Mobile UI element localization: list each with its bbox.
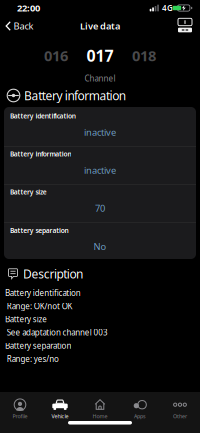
button[interactable]: 017 xyxy=(85,45,115,66)
staticText: Channel xyxy=(84,73,115,84)
staticText: 4G xyxy=(162,3,173,13)
staticText: Battery size xyxy=(10,188,47,196)
staticText: 016 xyxy=(44,46,68,65)
staticText: Range: OK/not OK xyxy=(5,301,73,311)
staticText: Home xyxy=(92,413,107,420)
button[interactable]: 016 xyxy=(41,46,71,65)
button[interactable]: Vehicle xyxy=(40,396,80,422)
staticText: 018 xyxy=(132,46,156,65)
button[interactable]: Other xyxy=(160,396,200,422)
staticText: Profile xyxy=(12,413,27,420)
staticText: Back xyxy=(13,20,33,32)
staticText: Battery separation xyxy=(5,340,71,351)
staticText: Battery information xyxy=(10,150,71,158)
staticText: No xyxy=(93,240,106,253)
staticText: inactive xyxy=(84,164,116,176)
staticText: Description xyxy=(23,266,83,282)
staticText: 017 xyxy=(86,45,113,66)
staticText: Battery size xyxy=(5,314,47,324)
button[interactable]: 018 xyxy=(129,46,159,65)
staticText: Battery separation xyxy=(10,226,69,235)
button[interactable]: Apps xyxy=(120,396,160,422)
staticText: Battery information xyxy=(24,87,126,103)
staticText: Apps xyxy=(134,413,146,420)
staticText: See adaptation channel 003 xyxy=(5,327,108,338)
button[interactable]: Adapter xyxy=(178,20,200,32)
staticText: inactive xyxy=(84,126,116,138)
button[interactable]: Home xyxy=(80,396,120,422)
staticText: 22:00 xyxy=(17,2,40,14)
staticText: Vehicle xyxy=(51,413,68,420)
staticText: 70 xyxy=(95,202,105,214)
staticText: Battery identification xyxy=(10,112,76,120)
staticText: Range: yes/no xyxy=(5,354,59,364)
staticText: Other xyxy=(173,413,187,420)
staticText: Battery identification xyxy=(5,287,81,298)
staticText: Live data xyxy=(80,20,120,32)
button[interactable]: Back xyxy=(0,20,33,32)
button[interactable]: Profile xyxy=(0,396,40,422)
